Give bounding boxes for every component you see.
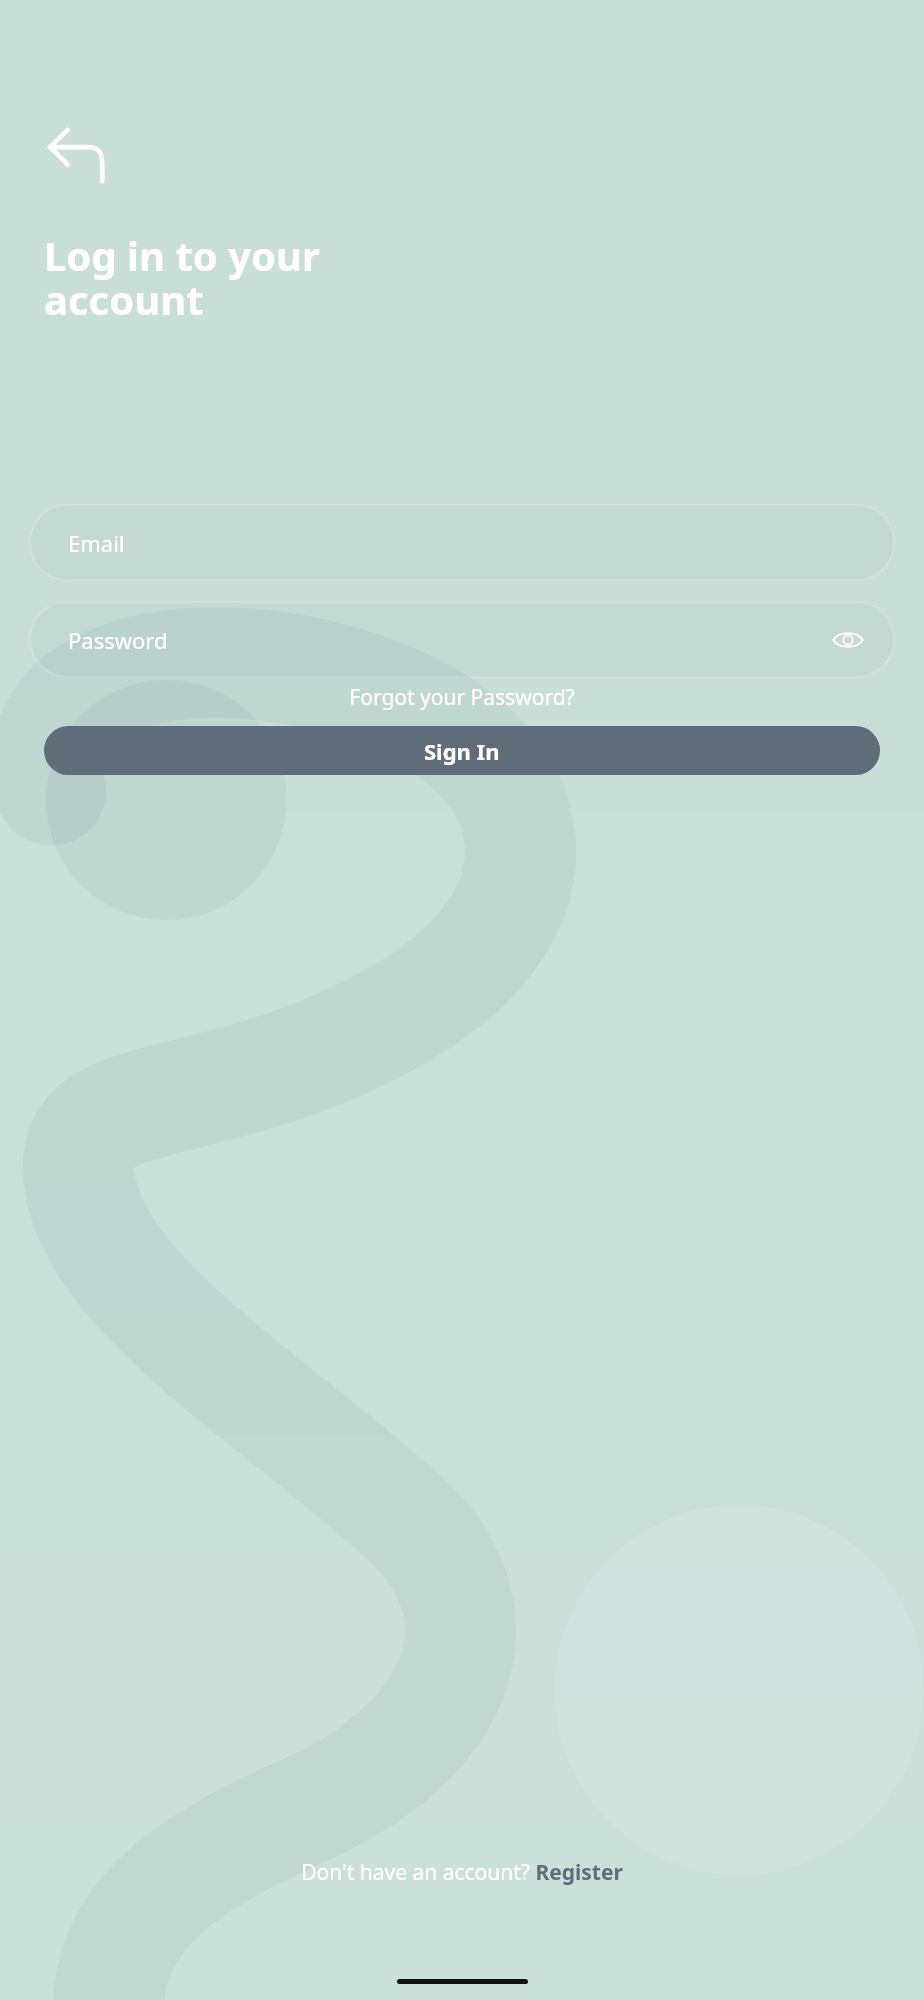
- staticText: Password: [68, 625, 168, 655]
- staticText: Email: [68, 528, 125, 558]
- button[interactable]: Sign In: [44, 726, 880, 775]
- button[interactable]: Show password: [820, 612, 876, 668]
- button[interactable]: Don't have an account? Register: [0, 1858, 924, 1887]
- button[interactable]: Forgot your Password?: [0, 683, 924, 712]
- staticText: Log in to your account: [44, 228, 320, 327]
- staticText: Forgot your Password?: [349, 683, 575, 712]
- button[interactable]: Password: [30, 602, 894, 677]
- staticText: Sign In: [424, 736, 500, 766]
- button[interactable]: Email: [30, 505, 894, 580]
- staticText: Don't have an account? Register: [301, 1858, 623, 1887]
- button[interactable]: Back: [44, 118, 106, 180]
